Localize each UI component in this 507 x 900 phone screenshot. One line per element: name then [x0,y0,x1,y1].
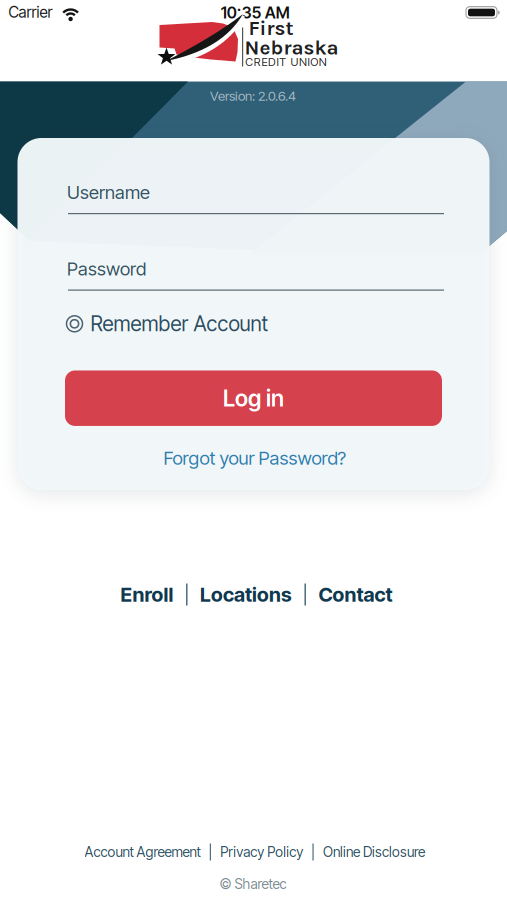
button[interactable]: Enroll [121,582,174,607]
button[interactable]: Online Disclosure [323,844,425,860]
staticText: © Sharetec [219,876,286,892]
button[interactable]: Password [68,259,444,291]
staticText: First [248,16,293,40]
staticText: Username [67,181,150,203]
button[interactable]: Account Agreement [84,844,200,860]
button[interactable]: Forgot your Password? [163,447,346,469]
staticText: Nebraska [244,35,338,60]
staticText: Remember Account [90,311,268,336]
staticText: Password [67,258,146,280]
staticText: Locations [200,582,292,607]
button[interactable]: Contact [318,582,392,607]
staticText: Enroll [121,582,174,607]
button[interactable]: Username [68,183,444,215]
staticText: Forgot your Password? [163,447,346,469]
staticText: Version: 2.0.6.4 [210,88,296,104]
staticText: Privacy Policy [220,844,303,860]
button[interactable]: Privacy Policy [220,844,303,860]
staticText: 10:35 AM [221,3,290,22]
staticText: Carrier [8,3,52,21]
staticText: CREDIT UNION [245,55,327,69]
staticText: Contact [318,582,392,607]
staticText: Account Agreement [84,844,200,860]
staticText: Log in [223,384,284,412]
button[interactable]: Log in [65,370,442,426]
button[interactable]: Locations [200,582,292,607]
button[interactable]: Remember Account [65,311,268,336]
staticText: Online Disclosure [323,844,425,860]
